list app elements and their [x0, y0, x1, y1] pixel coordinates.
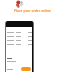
staticText: Place your order online: [14, 9, 51, 13]
button[interactable]: [7, 30, 33, 34]
other: Logo: [15, 0, 25, 9]
button[interactable]: [7, 34, 33, 38]
button[interactable]: Continue: [21, 67, 31, 71]
button[interactable]: [7, 42, 33, 46]
button[interactable]: [7, 38, 33, 42]
